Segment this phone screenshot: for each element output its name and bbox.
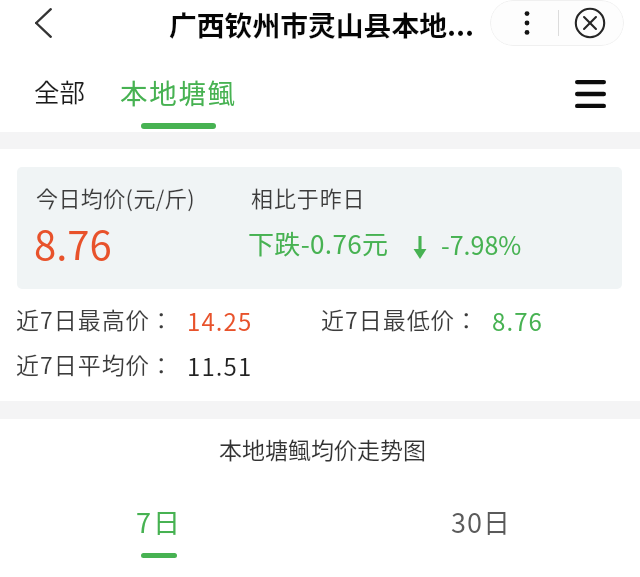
staticText: 相比于昨日 bbox=[251, 181, 366, 213]
staticText: 本地塘鲺均价走势图 bbox=[219, 432, 426, 465]
staticText: 14.25 bbox=[187, 303, 253, 338]
staticText: 30日 bbox=[451, 502, 511, 541]
button[interactable]: 7日 bbox=[136, 502, 182, 558]
button[interactable]: Back bbox=[21, 0, 66, 45]
staticText: 7日 bbox=[136, 502, 182, 541]
button[interactable]: Menu bbox=[566, 70, 614, 118]
staticText: 广西钦州市灵山县本地... bbox=[169, 4, 475, 44]
staticText: 今日均价(元/斤) bbox=[36, 181, 196, 213]
staticText: -7.98% bbox=[441, 226, 522, 262]
staticText: 全部 bbox=[34, 72, 86, 109]
button[interactable]: 30日 bbox=[451, 502, 511, 541]
staticText: 8.76 bbox=[492, 303, 544, 338]
button[interactable]: 本地塘鲺 bbox=[120, 67, 237, 129]
staticText: 下跌-0.76元 bbox=[248, 224, 389, 262]
button[interactable]: 全部 bbox=[34, 72, 86, 109]
staticText: 近7日最高价： bbox=[16, 302, 174, 335]
staticText: 近7日最低价： bbox=[321, 302, 479, 335]
staticText: 本地塘鲺 bbox=[120, 72, 237, 112]
staticText: 8.76 bbox=[34, 214, 112, 272]
staticText: 近7日平均价： bbox=[16, 347, 174, 380]
button[interactable]: Close bbox=[557, 0, 622, 46]
staticText: 11.51 bbox=[187, 348, 253, 383]
button[interactable]: More options bbox=[493, 0, 560, 46]
